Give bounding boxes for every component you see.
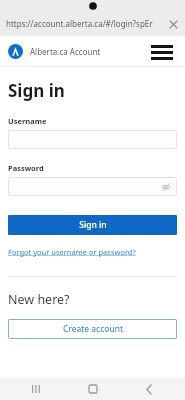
button[interactable]: Recent apps [16,378,56,400]
button[interactable]: Back [129,378,169,400]
staticText: Username [8,116,47,126]
button[interactable]: Close tab [166,17,180,31]
button[interactable]: Forgot your username or password? [8,247,136,257]
button[interactable] [8,130,177,149]
staticText: https://account.alberta.ca/#/login?spEr [6,18,166,29]
button[interactable]: Menu [149,41,175,63]
staticText: Create account [63,323,123,335]
button[interactable]: Home [73,378,113,400]
button[interactable]: Sign in [8,215,177,235]
staticText: Sign in [8,79,65,102]
staticText: Alberta.ca Account [30,46,101,57]
staticText: New here? [8,291,70,308]
staticText: Password [8,163,44,173]
button[interactable]: Show password [8,177,177,196]
button[interactable]: Show password [160,181,172,193]
staticText: Sign in [79,219,107,231]
button[interactable]: Create account [8,319,177,339]
